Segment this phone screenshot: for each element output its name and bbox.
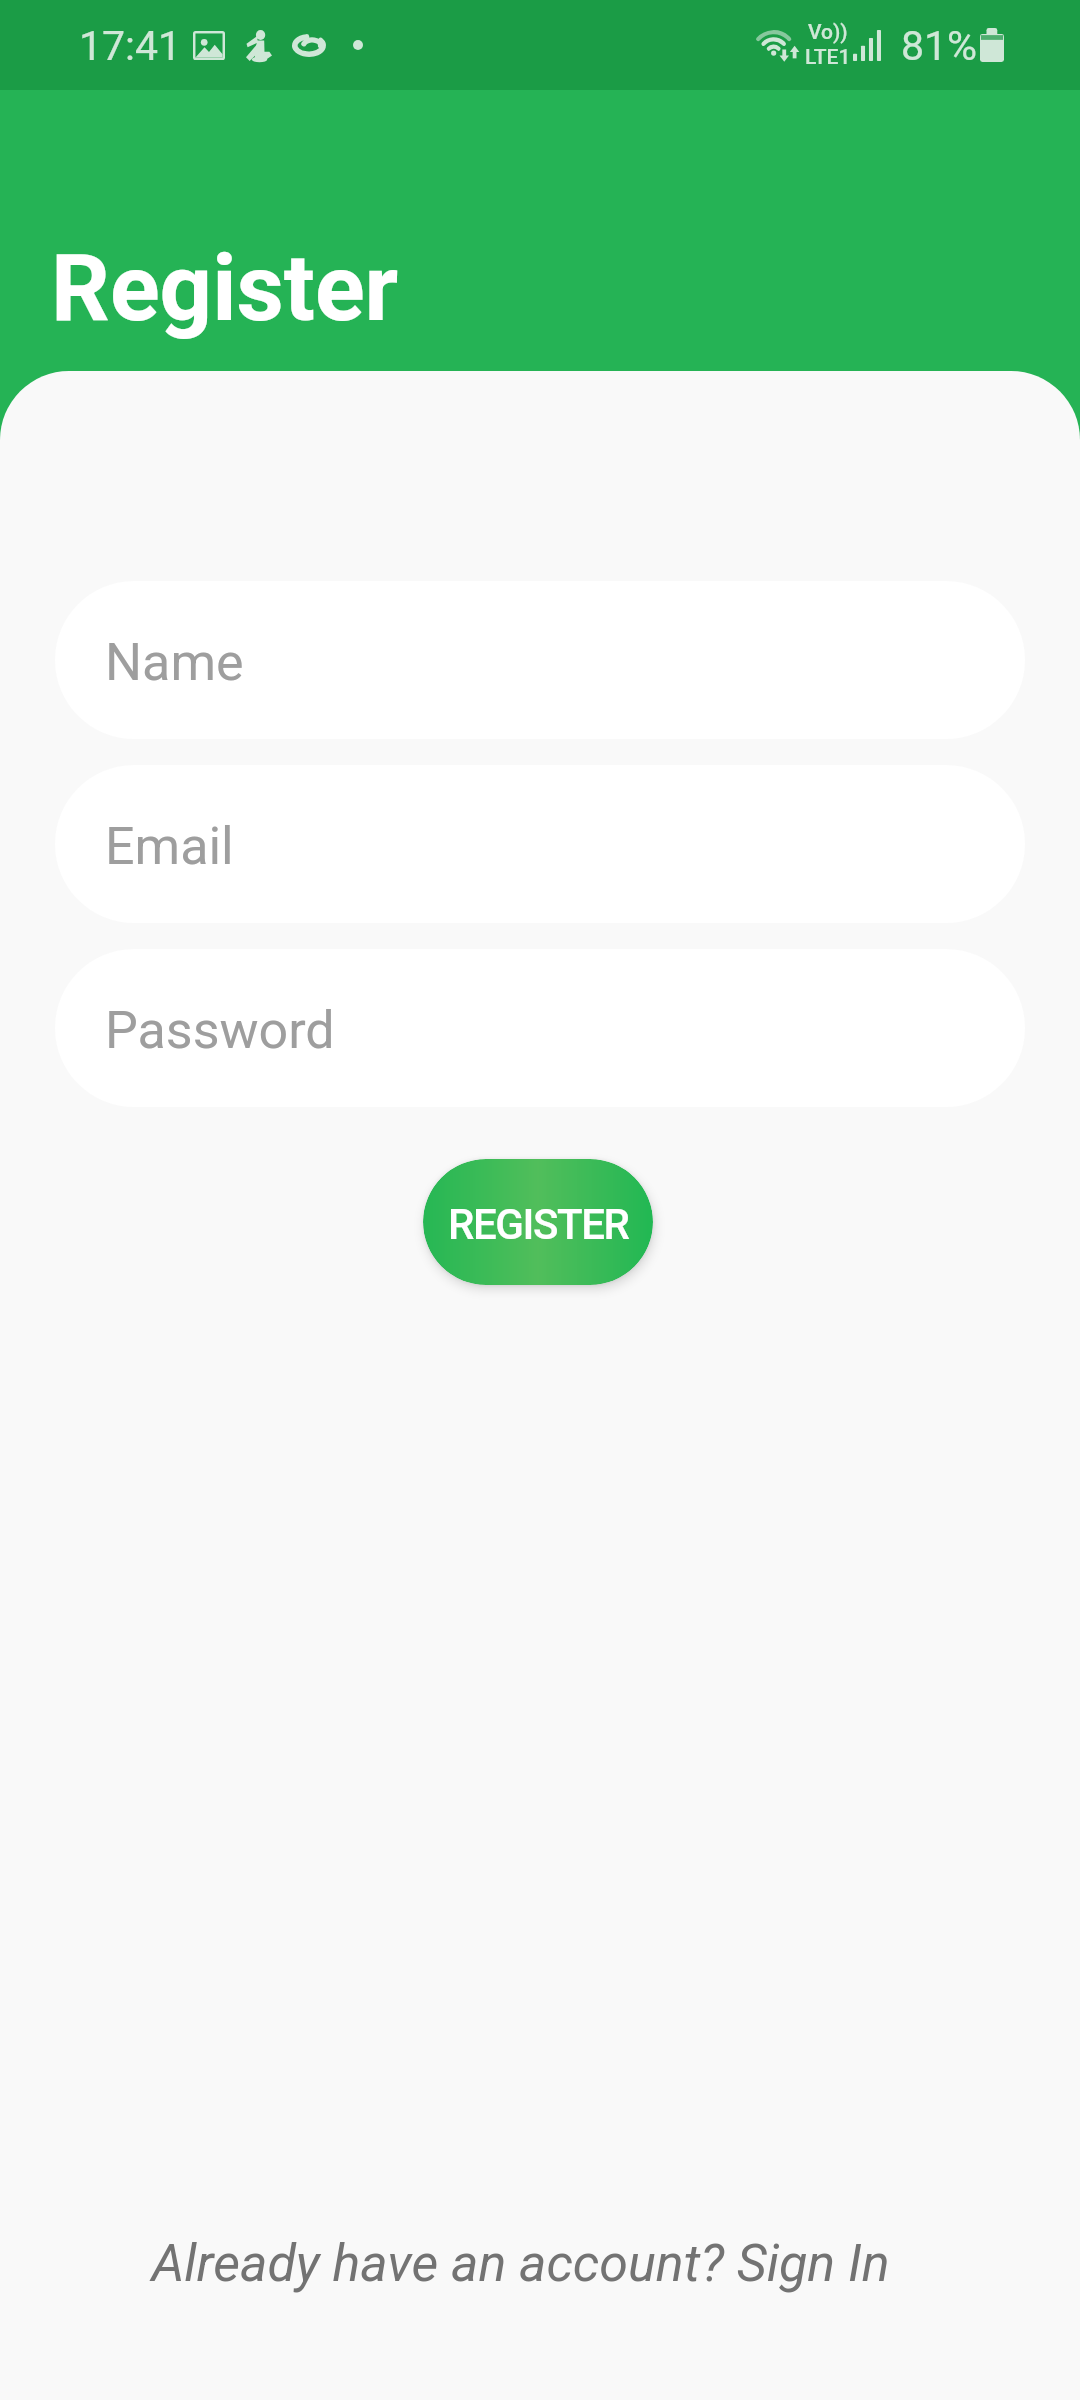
staticText: Already have an account? Sign In (151, 2233, 890, 2294)
button[interactable]: Email (55, 765, 1025, 923)
staticText: LTE1 (805, 45, 851, 70)
other: Bixby (292, 34, 326, 57)
staticText: Vo)) (808, 20, 848, 45)
button[interactable]: Name (55, 581, 1025, 739)
staticText: Name (105, 632, 244, 693)
staticText: REGISTER (448, 1200, 629, 1249)
staticText: 81% (901, 22, 978, 70)
button[interactable]: Password (55, 949, 1025, 1107)
other: Wi-Fi (755, 29, 800, 62)
staticText: 17:41 (79, 22, 182, 70)
other: Screenshot (193, 31, 225, 60)
other: Activity (246, 30, 272, 61)
staticText: Email (105, 816, 234, 877)
staticText: Password (105, 1000, 335, 1061)
staticText: Register (51, 235, 399, 343)
button[interactable]: REGISTER (423, 1159, 653, 1285)
button[interactable]: Already have an account? Sign In (0, 2233, 1080, 2313)
